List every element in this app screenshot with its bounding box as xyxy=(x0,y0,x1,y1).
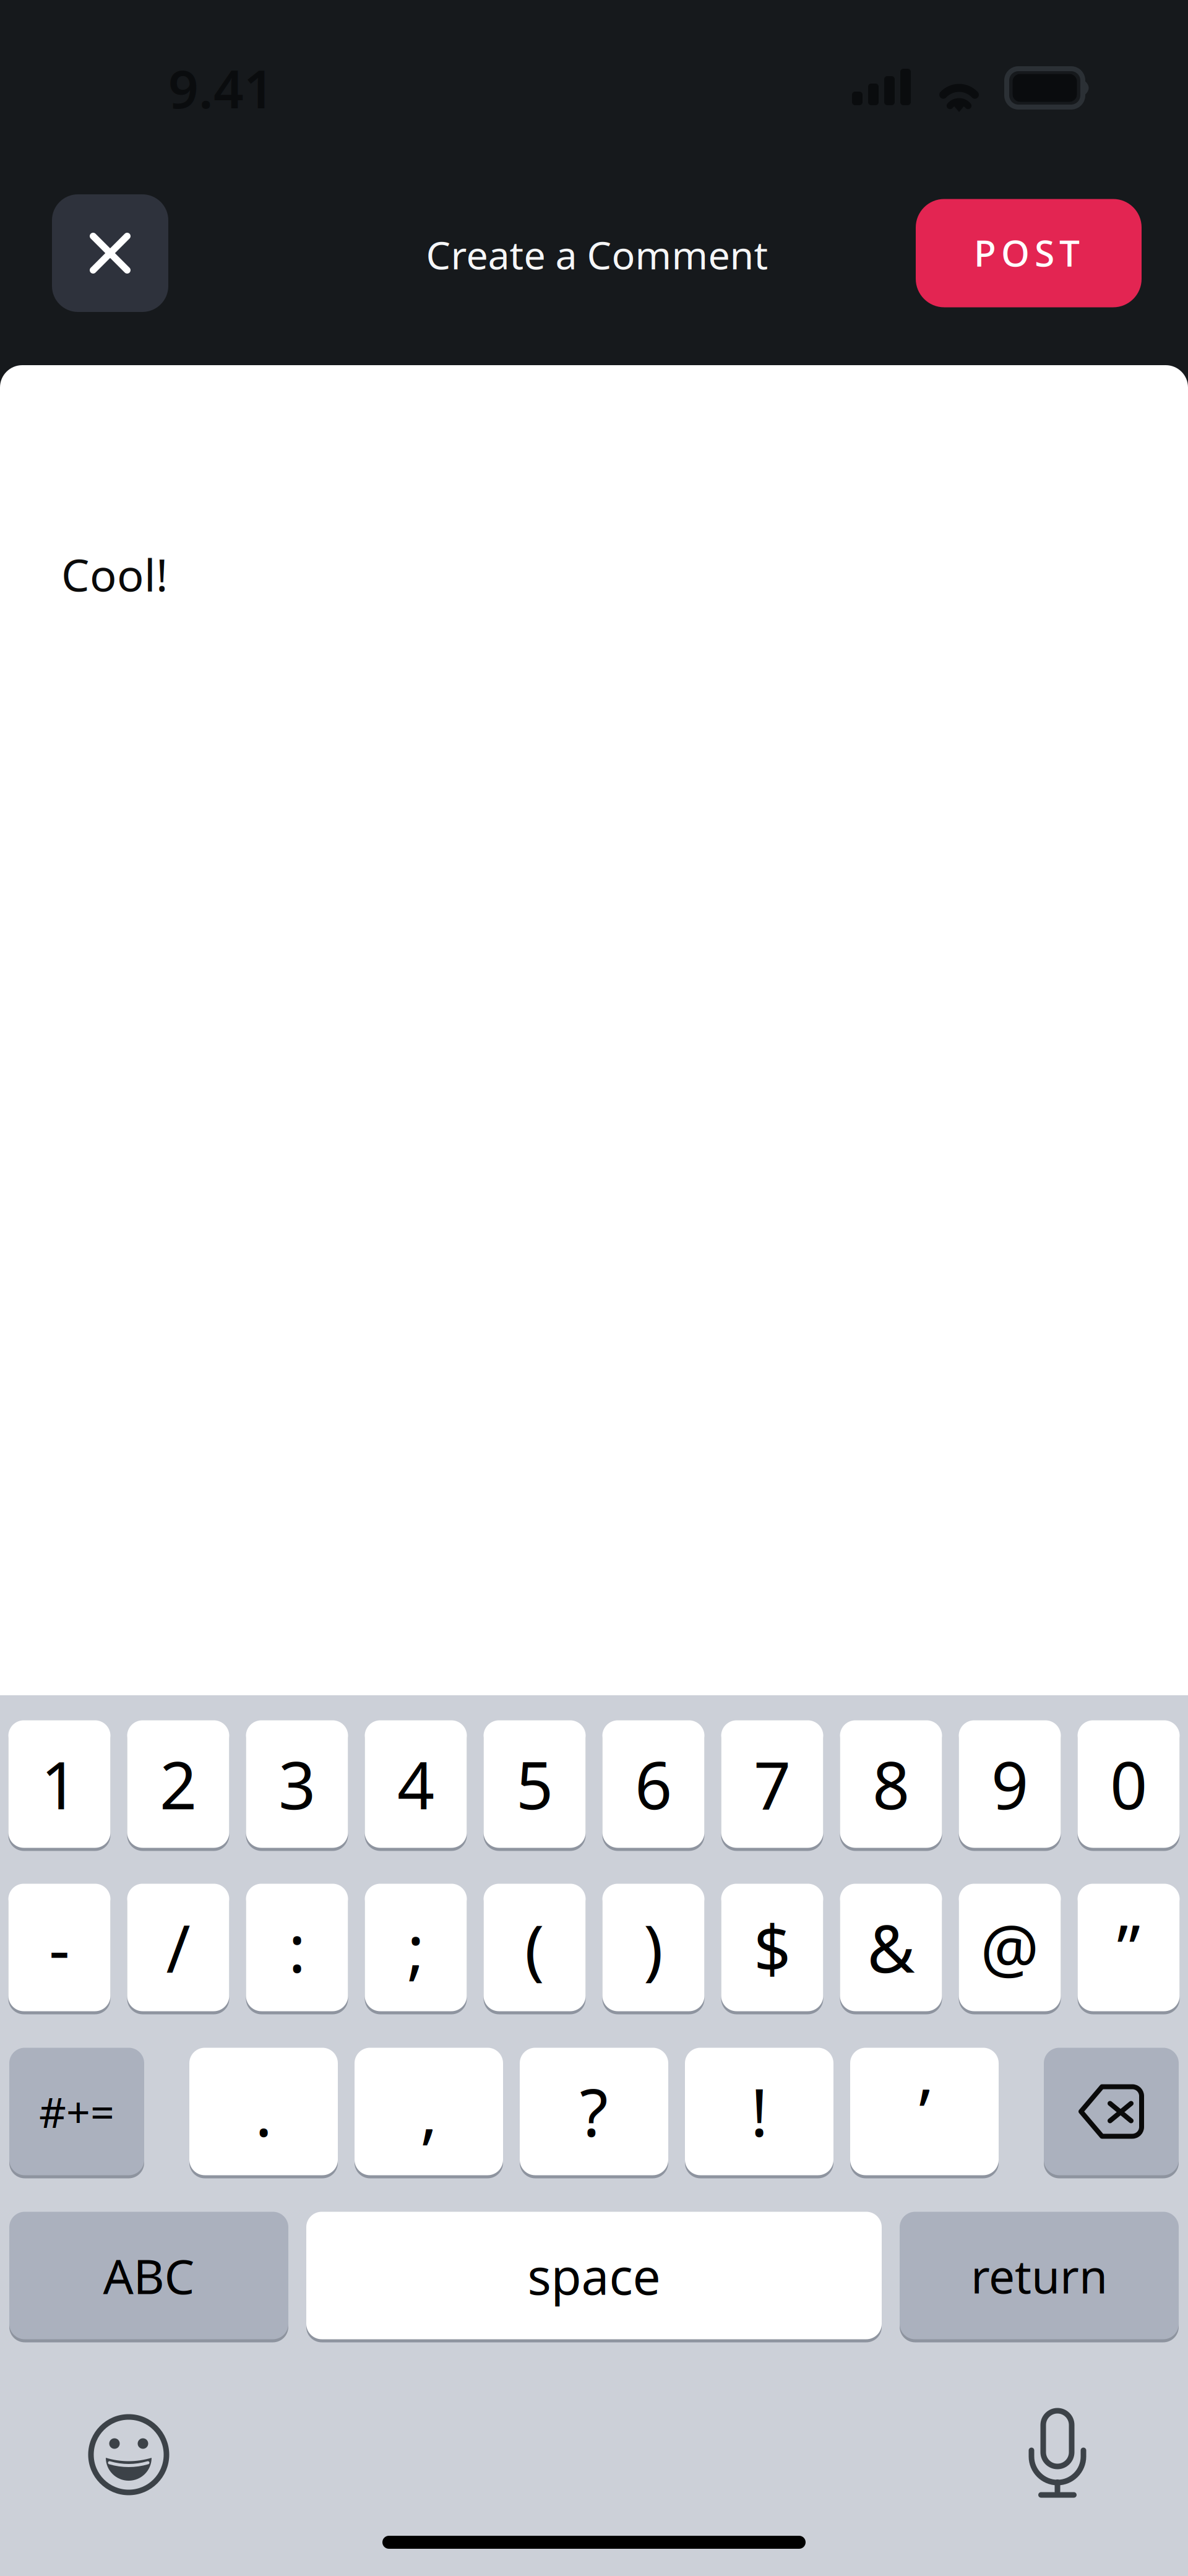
staticText: ; xyxy=(407,1904,424,1991)
button[interactable]: ABC xyxy=(9,2210,288,2341)
button[interactable]: 8 xyxy=(840,1719,942,1849)
button[interactable]: ” xyxy=(1078,1882,1180,2013)
staticText: ) xyxy=(643,1904,663,1991)
button[interactable]: 2 xyxy=(127,1719,229,1849)
button[interactable]: 1 xyxy=(8,1719,110,1849)
staticText: & xyxy=(867,1904,915,1991)
staticText: 1 xyxy=(41,1741,78,1827)
staticText: 8 xyxy=(872,1741,910,1827)
button[interactable]: Close xyxy=(52,194,168,312)
button[interactable]: 5 xyxy=(484,1719,586,1849)
button[interactable]: 9 xyxy=(959,1719,1061,1849)
staticText: : xyxy=(288,1904,306,1991)
button[interactable]: Emoji keyboard xyxy=(88,2414,169,2495)
staticText: . xyxy=(255,2068,272,2155)
button[interactable]: 4 xyxy=(365,1719,467,1849)
staticText: ( xyxy=(525,1904,544,1991)
button[interactable]: Delete xyxy=(1044,2046,1179,2177)
button[interactable]: , xyxy=(355,2046,503,2177)
button[interactable]: 7 xyxy=(721,1719,823,1849)
staticText: 3 xyxy=(278,1741,316,1827)
staticText: Cool! xyxy=(61,545,168,604)
staticText: 7 xyxy=(754,1741,791,1827)
button[interactable]: space xyxy=(306,2210,882,2341)
staticText: ’ xyxy=(919,2068,930,2155)
button[interactable]: @ xyxy=(959,1882,1061,2013)
staticText: ? xyxy=(580,2068,608,2155)
staticText: / xyxy=(166,1904,190,1991)
staticText: 5 xyxy=(516,1741,553,1827)
button[interactable]: $ xyxy=(721,1882,823,2013)
button[interactable]: ! xyxy=(685,2046,833,2177)
button[interactable]: : xyxy=(246,1882,348,2013)
button[interactable]: return xyxy=(900,2210,1179,2341)
button[interactable]: / xyxy=(127,1882,229,2013)
staticText: ” xyxy=(1117,1904,1140,1991)
staticText: 6 xyxy=(635,1741,672,1827)
staticText: Create a Comment xyxy=(426,229,768,280)
button[interactable]: #+= xyxy=(9,2046,144,2177)
button[interactable]: POST xyxy=(916,199,1142,307)
button[interactable]: 0 xyxy=(1078,1719,1180,1849)
staticText: 2 xyxy=(160,1741,197,1827)
button[interactable]: ; xyxy=(365,1882,467,2013)
button[interactable]: Dictation xyxy=(1028,2411,1087,2498)
staticText: #+= xyxy=(39,2084,114,2139)
staticText: - xyxy=(49,1904,70,1991)
staticText: return xyxy=(971,2245,1108,2306)
button[interactable]: & xyxy=(840,1882,942,2013)
staticText: 0 xyxy=(1110,1741,1147,1827)
staticText: 9 xyxy=(991,1741,1028,1827)
staticText: $ xyxy=(754,1904,791,1991)
staticText: ABC xyxy=(103,2244,195,2307)
button[interactable]: - xyxy=(8,1882,110,2013)
staticText: , xyxy=(420,2068,437,2155)
button[interactable]: ’ xyxy=(850,2046,999,2177)
button[interactable]: 3 xyxy=(246,1719,348,1849)
button[interactable]: ? xyxy=(520,2046,668,2177)
staticText: @ xyxy=(980,1904,1039,1991)
staticText: 9.41 xyxy=(168,53,274,123)
button[interactable]: 6 xyxy=(602,1719,704,1849)
button[interactable]: ) xyxy=(602,1882,704,2013)
staticText: 4 xyxy=(397,1741,434,1827)
staticText: POST xyxy=(974,228,1080,277)
staticText: ! xyxy=(751,2068,768,2155)
staticText: space xyxy=(527,2243,661,2308)
button[interactable]: ( xyxy=(484,1882,586,2013)
button[interactable]: . xyxy=(189,2046,338,2177)
